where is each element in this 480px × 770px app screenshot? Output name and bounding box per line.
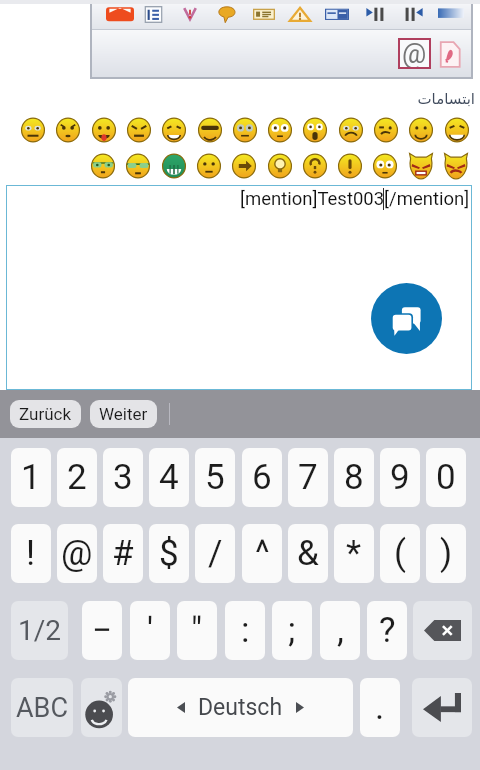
button[interactable]: Toolbar button 4 — [212, 3, 242, 25]
staticText: : — [241, 610, 250, 651]
button[interactable]: Emoticon 9 — [299, 114, 331, 146]
button[interactable]: : — [225, 601, 265, 660]
button[interactable]: Emoticon 16 — [158, 150, 190, 182]
button[interactable]: / — [195, 524, 235, 583]
button[interactable]: Emoticon 8 — [264, 114, 296, 146]
button[interactable]: Emoticon 10 — [335, 114, 367, 146]
staticText: 8 — [344, 457, 364, 498]
staticText: ' — [147, 610, 154, 651]
button[interactable]: 1/2 — [11, 601, 68, 660]
button[interactable]: Emoticon 22 — [369, 150, 401, 182]
staticText: # — [112, 533, 134, 574]
staticText: [mention]Test003[/mention] — [240, 188, 470, 210]
button[interactable]: Toolbar button 9 — [398, 3, 428, 25]
button[interactable]: Emoticon 20 — [299, 150, 331, 182]
button[interactable]: Toolbar button 7 — [322, 3, 352, 25]
button[interactable]: & — [288, 524, 328, 583]
button[interactable]: Emoticon 3 — [88, 114, 120, 146]
staticText: $ — [159, 533, 179, 574]
button[interactable]: Mention — [398, 38, 431, 69]
button[interactable]: # — [103, 524, 143, 583]
staticText: ^ — [255, 533, 270, 574]
button[interactable]: Deutsch — [128, 678, 353, 737]
staticText: @ — [402, 38, 427, 69]
button[interactable]: ? — [367, 601, 407, 660]
button[interactable]: Toolbar button 1 — [105, 3, 135, 25]
button[interactable]: Toolbar button 5 — [249, 3, 279, 25]
staticText: 1 — [21, 457, 41, 498]
staticText: ABC — [16, 692, 69, 724]
button[interactable]: New message — [371, 283, 442, 354]
button[interactable]: $ — [149, 524, 189, 583]
button[interactable]: Toolbar button 2 — [138, 3, 168, 25]
button[interactable]: Emoji and settings — [81, 678, 122, 737]
button[interactable]: Emoticon 14 — [87, 150, 119, 182]
staticText: 3 — [113, 457, 133, 498]
staticText: ! — [26, 533, 36, 574]
staticText: . — [375, 687, 385, 728]
staticText: * — [346, 533, 362, 574]
button[interactable]: ) — [426, 524, 466, 583]
button[interactable]: 4 — [149, 448, 189, 507]
staticText: & — [297, 533, 319, 574]
button[interactable]: Emoticon 15 — [122, 150, 154, 182]
button[interactable]: Emoticon 6 — [194, 114, 226, 146]
button[interactable]: * — [334, 524, 374, 583]
button[interactable]: Toolbar button 8 — [361, 3, 391, 25]
button[interactable]: Emoticon 24 — [440, 150, 472, 182]
button[interactable]: Toolbar button 6 — [285, 3, 315, 25]
staticText: , — [337, 610, 344, 651]
button[interactable]: Emoticon 12 — [405, 114, 437, 146]
staticText: ابتسامات — [0, 90, 475, 107]
button[interactable]: Emoticon 11 — [370, 114, 402, 146]
button[interactable]: ' — [130, 601, 170, 660]
button[interactable]: Zurück — [10, 400, 81, 428]
button[interactable]: ABC — [11, 678, 73, 737]
button[interactable]: 0 — [426, 448, 466, 507]
button[interactable]: Backspace — [413, 601, 472, 660]
button[interactable]: Emoticon 23 — [405, 150, 437, 182]
button[interactable]: ( — [380, 524, 420, 583]
staticText: 9 — [390, 457, 410, 498]
button[interactable]: 8 — [334, 448, 374, 507]
button[interactable]: Emoticon 4 — [123, 114, 155, 146]
button[interactable]: Emoticon 17 — [193, 150, 225, 182]
button[interactable]: 2 — [57, 448, 97, 507]
button[interactable]: ^ — [242, 524, 282, 583]
button[interactable]: 1 — [11, 448, 51, 507]
staticText: ; — [288, 610, 296, 651]
button[interactable]: Emoticon 21 — [334, 150, 366, 182]
button[interactable]: Emoticon 1 — [17, 114, 49, 146]
staticText: Weiter — [99, 404, 148, 424]
staticText: ( — [394, 533, 406, 574]
button[interactable]: @ — [57, 524, 97, 583]
staticText: 2 — [67, 457, 87, 498]
button[interactable]: " — [177, 601, 217, 660]
button[interactable]: Emoticon 5 — [158, 114, 190, 146]
button[interactable]: 3 — [103, 448, 143, 507]
button[interactable]: 5 — [195, 448, 235, 507]
button[interactable]: . — [360, 678, 400, 737]
button[interactable]: 7 — [288, 448, 328, 507]
button[interactable]: Emoticon 18 — [228, 150, 260, 182]
button[interactable]: Emoticon 2 — [52, 114, 84, 146]
button[interactable]: 9 — [380, 448, 420, 507]
staticText: 0 — [436, 457, 456, 498]
button[interactable]: Emoticon 7 — [229, 114, 261, 146]
staticText: 6 — [252, 457, 272, 498]
button[interactable]: Weiter — [90, 400, 157, 428]
button[interactable]: PDF — [437, 39, 463, 69]
staticText: @ — [61, 533, 93, 574]
button[interactable]: 6 — [242, 448, 282, 507]
button[interactable]: Enter — [412, 678, 472, 737]
button[interactable]: , — [320, 601, 360, 660]
button[interactable]: Toolbar button 10 — [436, 3, 466, 25]
button[interactable]: − — [82, 601, 122, 660]
button[interactable]: Toolbar button 3 — [175, 3, 205, 25]
button[interactable]: ! — [11, 524, 51, 583]
button[interactable]: Emoticon 13 — [441, 114, 473, 146]
staticText: 4 — [159, 457, 179, 498]
button[interactable]: Emoticon 19 — [264, 150, 296, 182]
staticText: " — [191, 610, 203, 651]
button[interactable]: ; — [272, 601, 312, 660]
